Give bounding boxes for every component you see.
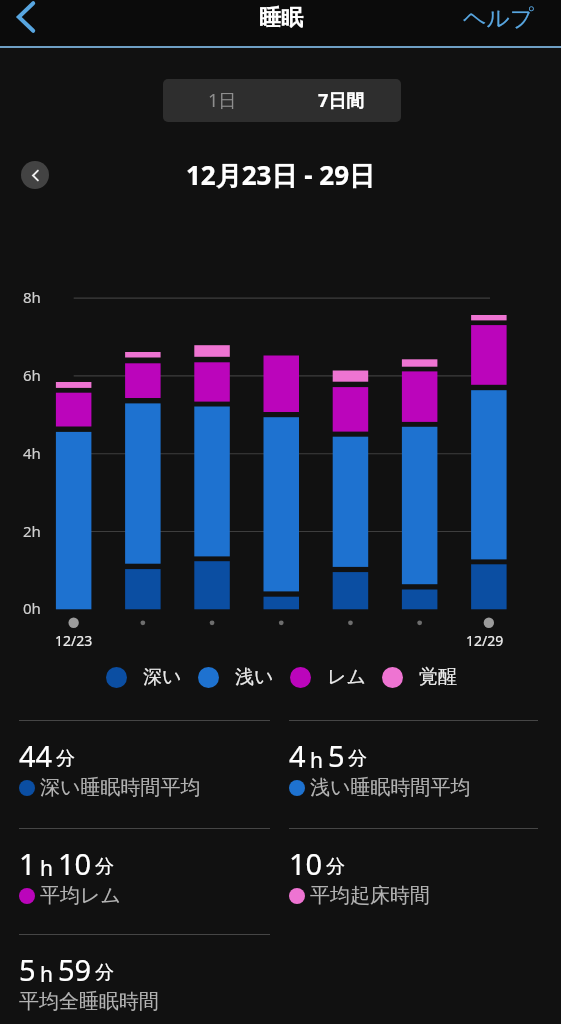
staticText: 分 bbox=[56, 747, 75, 771]
button[interactable]: 浅い bbox=[198, 665, 274, 689]
staticText: h bbox=[40, 960, 53, 989]
staticText: 2h bbox=[23, 521, 41, 541]
staticText: 分 bbox=[326, 855, 345, 879]
staticText: 5 bbox=[19, 950, 36, 989]
staticText: 5 bbox=[328, 736, 345, 775]
staticText: 59 bbox=[58, 950, 92, 989]
staticText: 分 bbox=[348, 747, 367, 771]
staticText: 7日間 bbox=[318, 88, 365, 113]
staticText: 10 bbox=[58, 844, 92, 883]
button[interactable]: 1日 bbox=[163, 79, 282, 122]
staticText: h bbox=[40, 854, 53, 883]
staticText: 浅い睡眠時間平均 bbox=[310, 775, 471, 800]
staticText: 平均レム bbox=[40, 883, 121, 908]
staticText: 12/29 bbox=[466, 631, 504, 650]
button[interactable]: 深い bbox=[106, 665, 182, 689]
staticText: h bbox=[310, 746, 323, 775]
button[interactable]: ヘルプ bbox=[463, 4, 534, 33]
staticText: 12/23 bbox=[55, 631, 93, 650]
staticText: 8h bbox=[23, 287, 41, 307]
staticText: 1 bbox=[19, 844, 36, 883]
staticText: ヘルプ bbox=[463, 4, 534, 33]
staticText: 4 bbox=[289, 736, 306, 775]
staticText: 6h bbox=[23, 365, 41, 385]
button[interactable]: 覚醒 bbox=[382, 665, 457, 689]
staticText: 分 bbox=[95, 961, 114, 985]
staticText: 深い bbox=[143, 665, 182, 689]
staticText: 44 bbox=[19, 736, 53, 775]
staticText: 覚醒 bbox=[419, 665, 457, 689]
button[interactable]: レム bbox=[290, 665, 366, 689]
staticText: 10 bbox=[289, 844, 323, 883]
staticText: 分 bbox=[95, 855, 114, 879]
staticText: レム bbox=[327, 665, 366, 689]
staticText: 平均起床時間 bbox=[310, 883, 430, 908]
button[interactable]: Back bbox=[2, 0, 50, 40]
staticText: 4h bbox=[23, 443, 41, 463]
staticText: 0h bbox=[23, 598, 41, 618]
staticText: 12月23日 - 29日 bbox=[186, 157, 376, 193]
button[interactable]: Previous week bbox=[21, 161, 49, 189]
staticText: 1日 bbox=[208, 88, 237, 113]
staticText: 平均全睡眠時間 bbox=[19, 989, 159, 1014]
staticText: 深い睡眠時間平均 bbox=[40, 775, 201, 800]
staticText: 睡眠 bbox=[259, 4, 303, 32]
staticText: 浅い bbox=[235, 665, 274, 689]
button[interactable]: 7日間 bbox=[282, 79, 401, 122]
